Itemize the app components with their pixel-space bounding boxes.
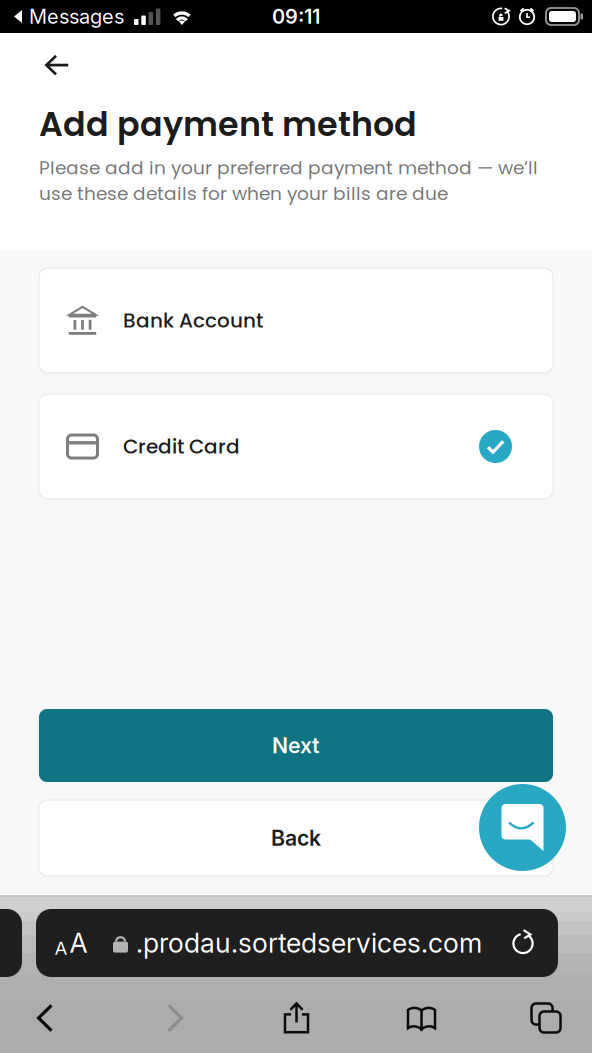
staticText: Credit Card (123, 432, 240, 460)
staticText: A (69, 927, 87, 959)
button[interactable]: A (36, 909, 558, 977)
staticText: .prodau.sortedservices.com (136, 927, 482, 959)
button[interactable]: Bookmarks (376, 996, 467, 1040)
button[interactable]: Bank Account (39, 268, 553, 373)
staticText: Next (272, 733, 320, 758)
button[interactable]: Open chat (479, 784, 566, 871)
button[interactable]: Tabs (500, 996, 592, 1040)
staticText: Messages (23, 4, 124, 29)
staticText: 09:11 (272, 4, 320, 29)
button[interactable]: Next (39, 709, 553, 782)
staticText: Please add in your preferred payment met… (39, 155, 538, 207)
staticText: Bank Account (123, 306, 263, 334)
button[interactable]: Forward (130, 996, 220, 1040)
button[interactable]: Back (39, 51, 89, 79)
button[interactable]: Share (251, 996, 342, 1040)
button[interactable]: Back (0, 996, 90, 1040)
staticText: Add payment method (39, 101, 417, 148)
button[interactable]: Credit Card (39, 394, 553, 499)
staticText: A (54, 936, 67, 959)
button[interactable]: Back (39, 800, 553, 876)
staticText: Back (271, 825, 321, 851)
